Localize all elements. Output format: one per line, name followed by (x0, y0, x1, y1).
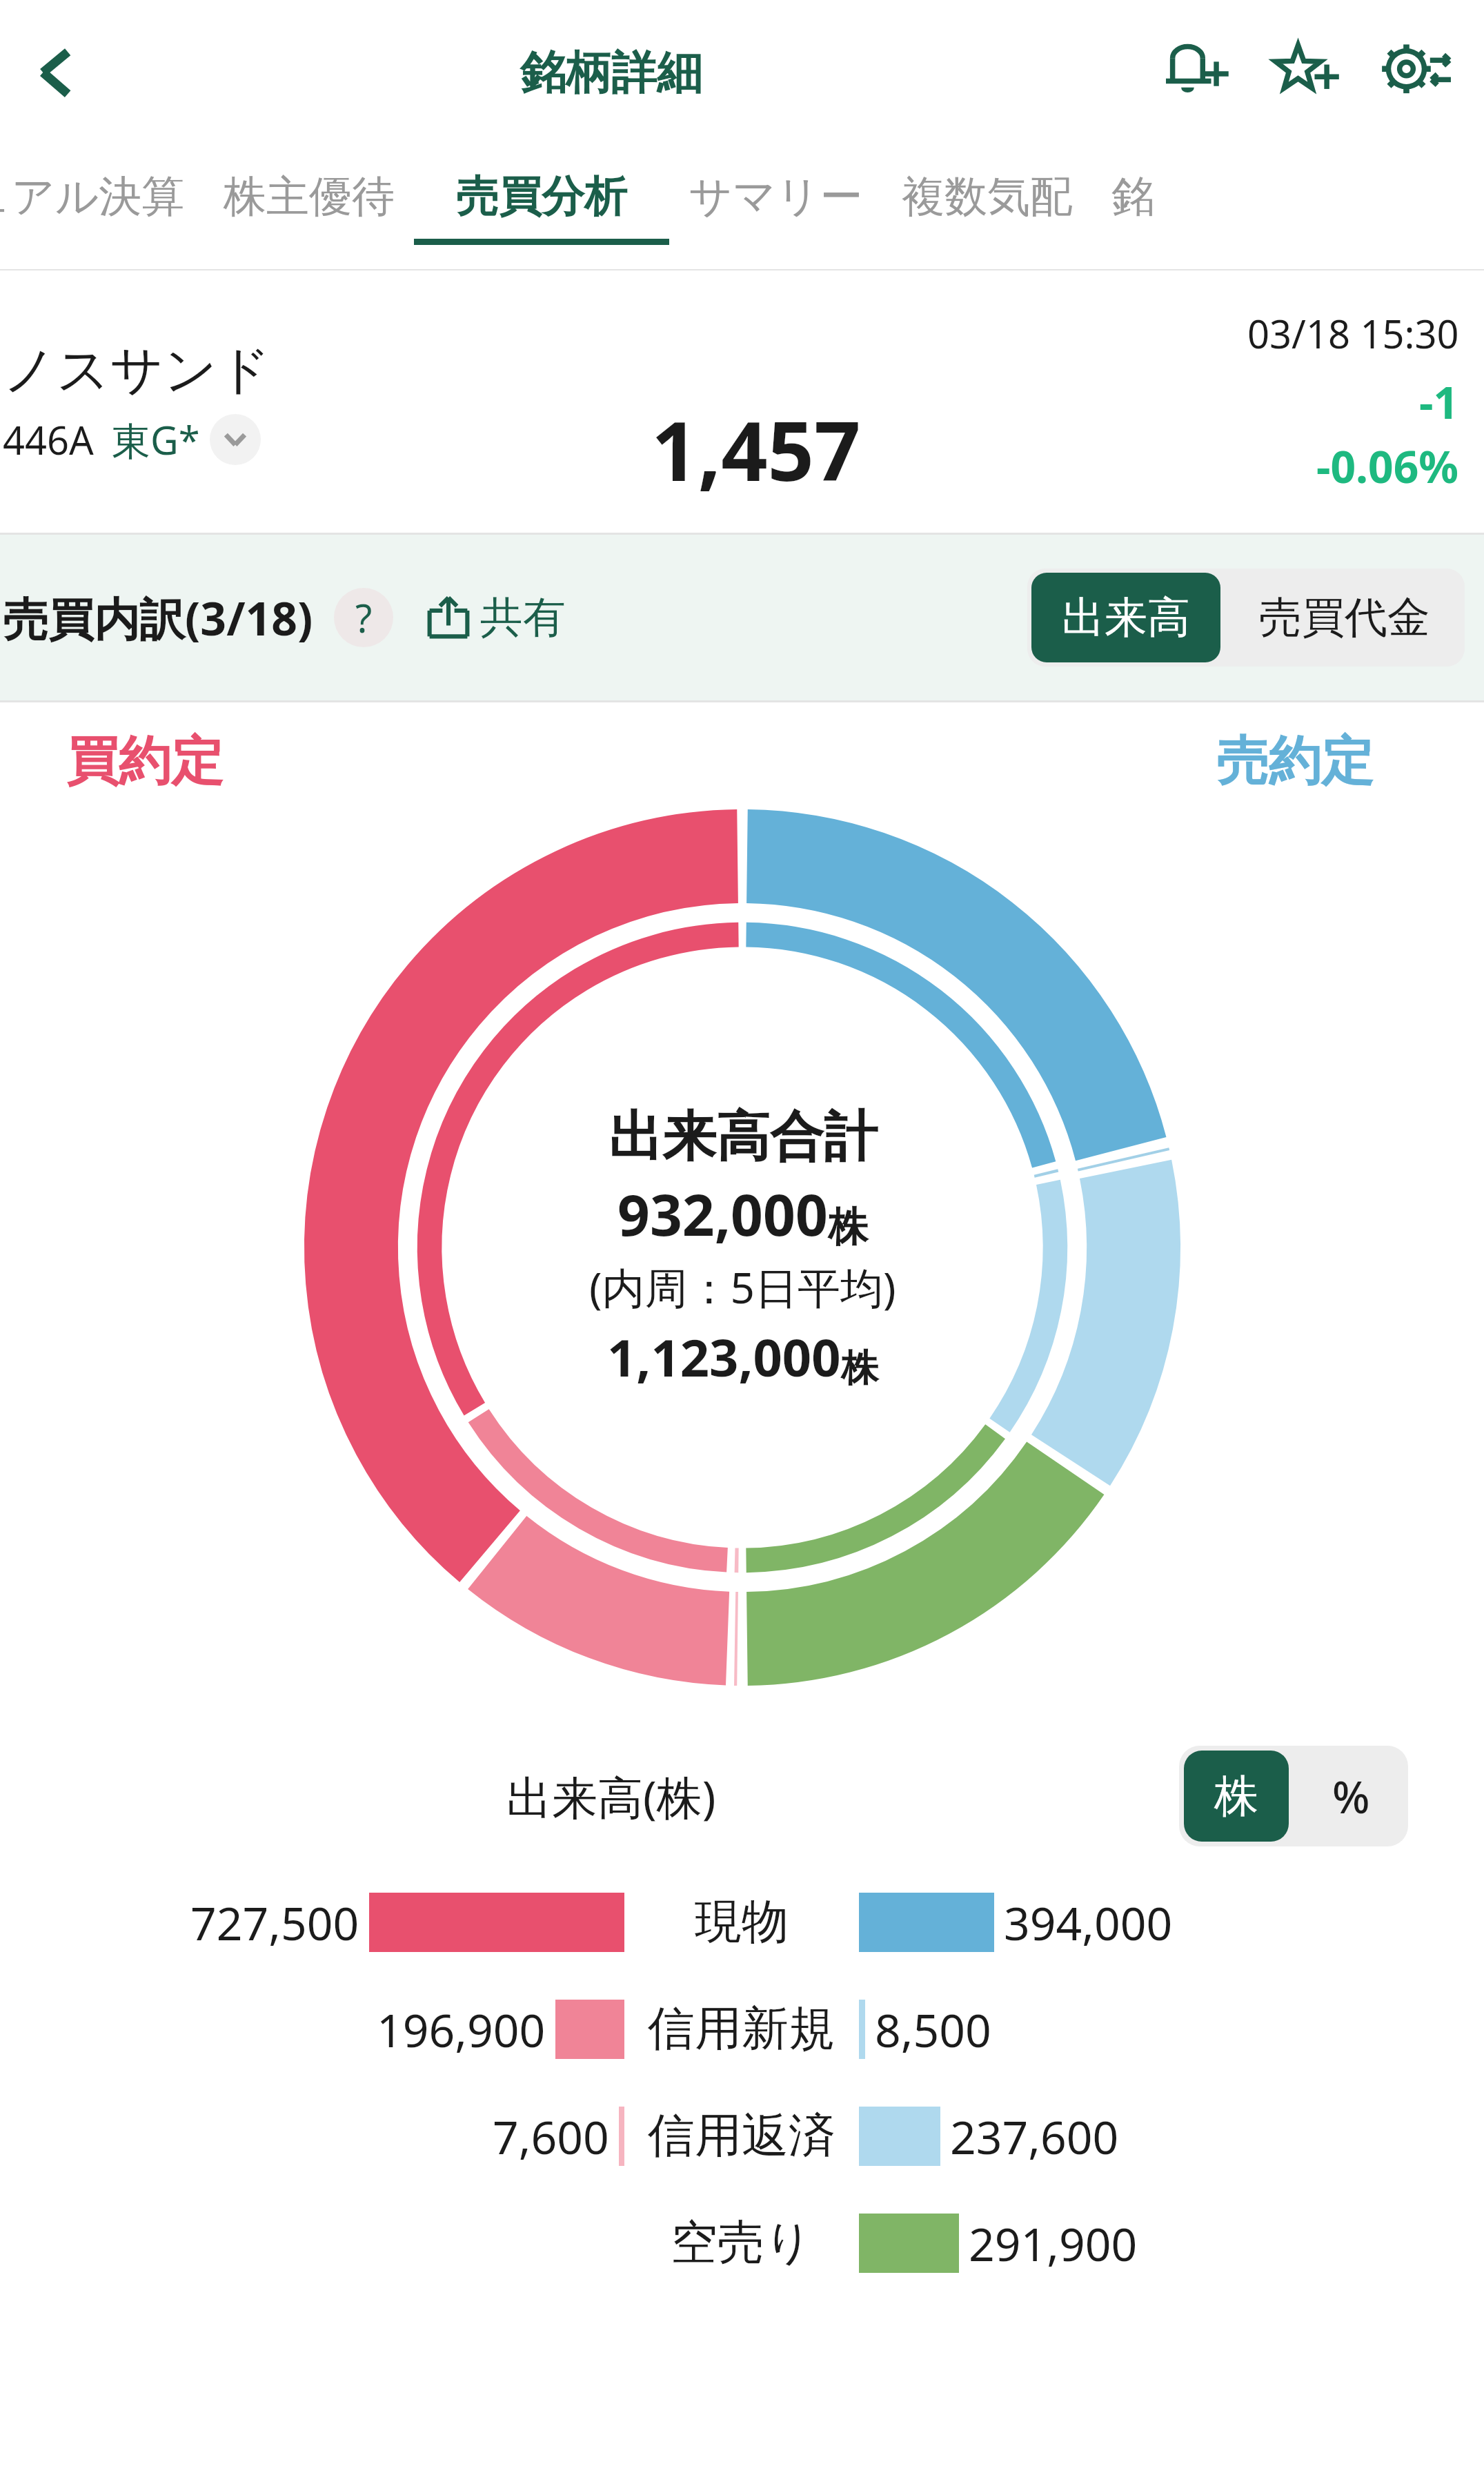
button[interactable]: 727,500 (0, 1869, 1484, 1975)
staticText: 共有 (480, 591, 566, 644)
staticText: 出来高合計 (609, 1103, 878, 1171)
button[interactable]: Back (4, 21, 108, 124)
staticText: 株 (841, 1345, 878, 1392)
staticText: 銘 (1111, 170, 1154, 224)
staticText: 複数気配 (902, 170, 1073, 224)
staticText: -1 (1419, 372, 1459, 432)
button[interactable]: Settings (1371, 28, 1461, 117)
staticText: 727,500 (190, 1891, 359, 1953)
staticText: ュアル決算 (0, 170, 185, 224)
button[interactable]: 株 (1184, 1751, 1289, 1842)
staticText: 銘柄詳細 (520, 44, 702, 101)
staticText: 現物 (695, 1893, 789, 1952)
button[interactable]: 共有 (424, 591, 566, 644)
button[interactable]: 7,600 (0, 2082, 1484, 2189)
button[interactable]: サマリー (669, 145, 882, 269)
staticText: 291,900 (969, 2212, 1138, 2274)
staticText: 売約定 (1216, 729, 1374, 795)
staticText: 株 (828, 1202, 868, 1252)
button[interactable]: Help (334, 588, 393, 647)
staticText: 8,500 (875, 1998, 991, 2060)
staticText: 394,000 (1004, 1891, 1173, 1953)
staticText: 売買代金 (1259, 591, 1430, 644)
staticText: 出来高 (1062, 591, 1190, 644)
staticText: 03/18 15:30 (1247, 307, 1459, 359)
button[interactable]: Add to watchlist (1262, 28, 1352, 117)
staticText: 信用新規 (648, 2000, 835, 2059)
staticText: 売買内訳(3/18) (3, 586, 313, 649)
staticText: (内周：5日平均) (589, 1258, 896, 1317)
button[interactable]: % (1298, 1751, 1403, 1842)
staticText: 株 (1214, 1768, 1258, 1824)
staticText: 446A (3, 413, 94, 466)
staticText: % (1332, 1766, 1370, 1826)
staticText: 空売り (671, 2214, 813, 2273)
button[interactable]: 出来高 (1031, 573, 1220, 662)
button[interactable]: 196,900 (0, 1975, 1484, 2082)
button[interactable]: 空売り (0, 2189, 1484, 2296)
staticText: 1,123,000 (607, 1322, 841, 1392)
staticText: 237,600 (950, 2105, 1119, 2167)
button[interactable]: 銘 (1092, 145, 1174, 269)
button[interactable]: Expand market (210, 414, 261, 465)
staticText: 1,457 (651, 394, 861, 505)
button[interactable]: 複数気配 (882, 145, 1092, 269)
staticText: サマリー (689, 170, 863, 224)
button[interactable]: 売買分析 (414, 145, 669, 269)
button[interactable]: 売買代金 (1229, 573, 1461, 662)
staticText: 信用返済 (648, 2107, 835, 2166)
button[interactable]: ュアル決算 (0, 145, 204, 269)
staticText: 932,000 (617, 1175, 828, 1252)
staticText: 東G* (112, 413, 200, 466)
button[interactable]: 株主優待 (204, 145, 414, 269)
button[interactable]: Add alert (1153, 28, 1243, 117)
staticText: ノスサンド (3, 337, 271, 404)
staticText: 196,900 (377, 1998, 546, 2060)
staticText: 買約定 (66, 729, 224, 795)
staticText: 7,600 (493, 2105, 609, 2167)
staticText: 株主優待 (224, 170, 395, 224)
staticText: ? (355, 591, 373, 644)
staticText: -0.06% (1316, 436, 1459, 496)
staticText: 出来高(株) (506, 1765, 716, 1827)
staticText: 売買分析 (456, 170, 627, 224)
